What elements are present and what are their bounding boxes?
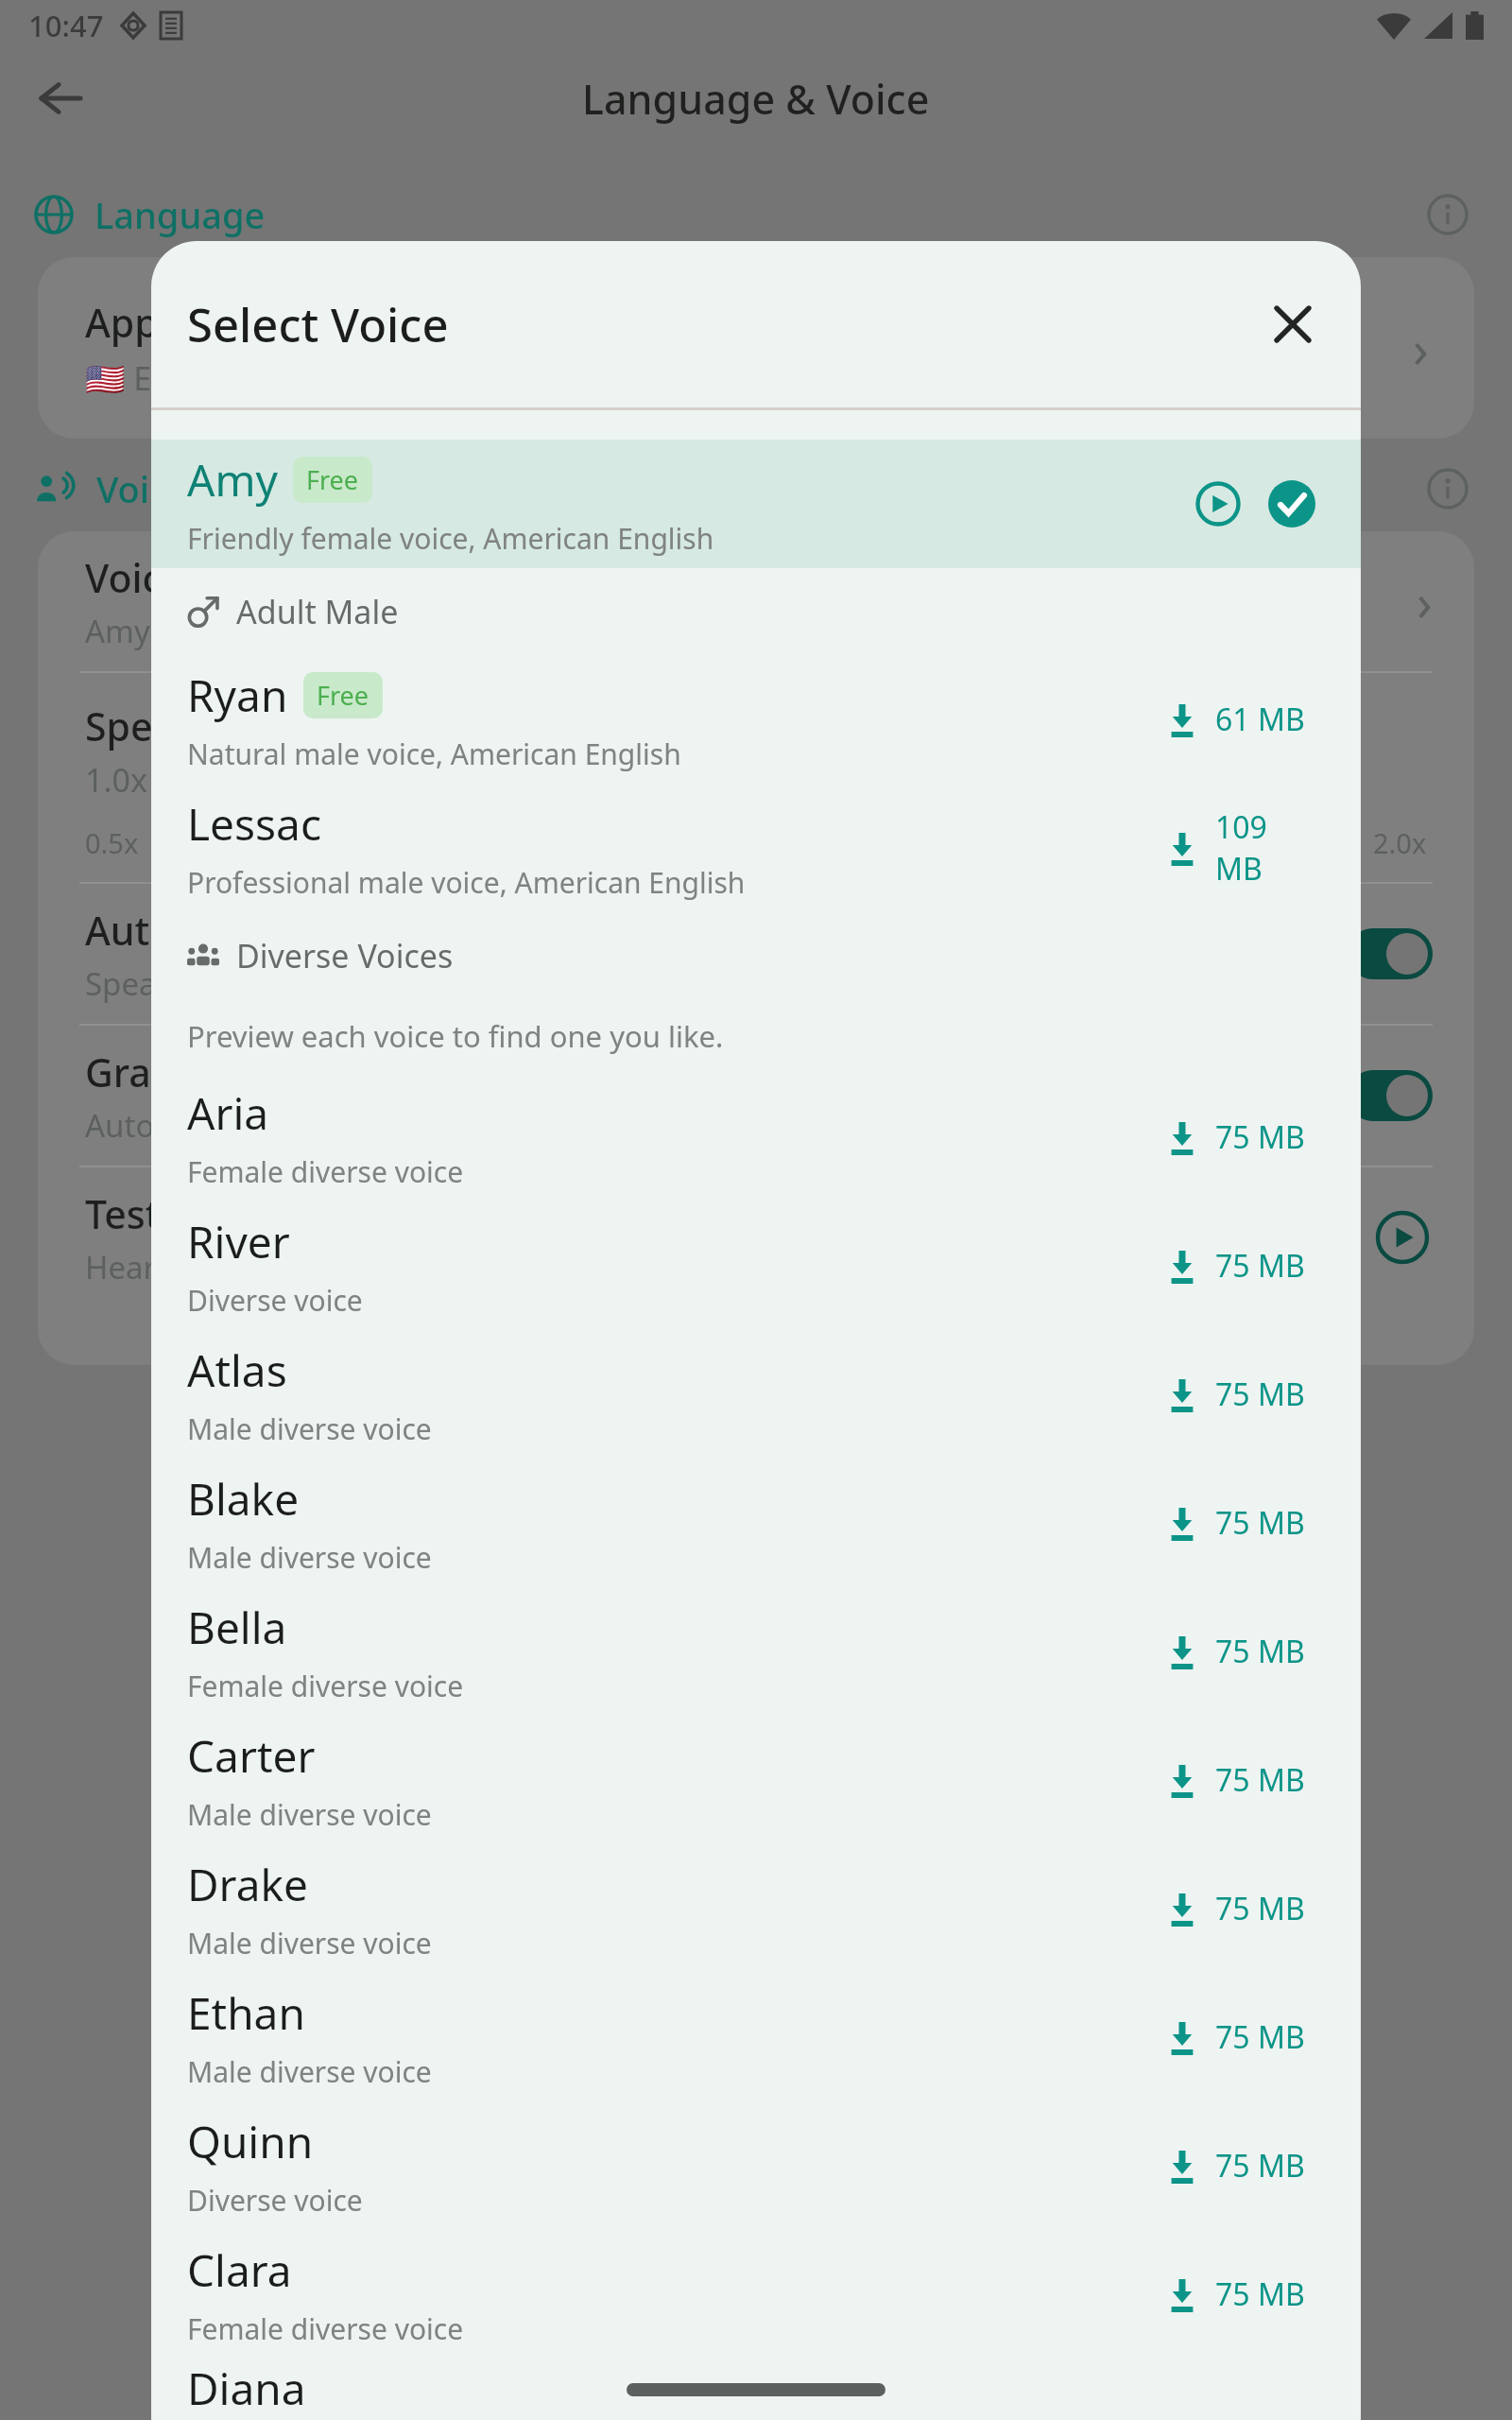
staticText: Male diverse voice [187,2052,432,2091]
staticText: Diverse voice [187,2181,363,2220]
staticText: Free [317,678,369,713]
button[interactable]: Diana [151,2359,1361,2420]
button[interactable]: Download Drake [1160,1878,1325,1939]
staticText: 75 MB [1215,1245,1305,1287]
staticText: 75 MB [1215,1888,1305,1929]
button[interactable]: Info [1417,458,1478,519]
staticText: Test Voice [85,1187,269,1240]
button[interactable]: Ryan [151,655,1361,784]
staticText: Language & Voice [582,71,930,127]
button[interactable]: Info [1417,184,1478,245]
staticText: Auto-correct speech [85,1104,379,1147]
button[interactable]: Download Atlas [1160,1364,1325,1425]
button[interactable] [1348,928,1433,979]
staticText: 109 MB [1215,806,1321,890]
button[interactable]: Download River [1160,1236,1325,1296]
staticText: Ryan [187,665,288,725]
button[interactable]: Download Quinn [1160,2135,1325,2196]
button[interactable]: Drake [151,1844,1361,1973]
staticText: 10:47 [28,6,104,45]
staticText: Aria [187,1083,269,1143]
staticText: Grammar [85,1046,264,1098]
staticText: Amy - Friendly female voice [85,610,486,652]
button[interactable]: Download Lessac [1160,797,1325,899]
staticText: 75 MB [1215,1116,1305,1158]
staticText: 75 MB [1215,1631,1305,1672]
button[interactable]: Play sample [1372,1207,1433,1268]
button[interactable]: App Language [38,257,1474,439]
staticText: Professional male voice, American Englis… [187,863,746,902]
staticText: 🇺🇸 English (US) [85,356,312,400]
staticText: Atlas [187,1340,287,1400]
staticText: Male diverse voice [187,1924,432,1962]
staticText: Language [94,190,266,239]
button[interactable]: Lessac [151,784,1361,912]
staticText: Lessac [187,794,322,854]
staticText: › [1417,566,1433,636]
staticText: Adult Male [236,590,399,633]
staticText: Preview each voice to find one you like. [187,1016,724,1056]
staticText: Diverse voice [187,1281,363,1320]
staticText: Auto-read [85,904,270,957]
staticText: Amy [187,450,278,510]
staticText: 1.0x (Normal) [85,758,289,802]
button[interactable]: Test Voice [38,1167,1474,1307]
staticText: Female diverse voice [187,2309,464,2348]
button[interactable]: Carter [151,1716,1361,1844]
button[interactable]: Ethan [151,1973,1361,2101]
button[interactable]: Atlas [151,1330,1361,1459]
button[interactable]: Grammar [38,1026,1474,1166]
button[interactable] [1348,1070,1433,1121]
staticText: 75 MB [1215,2273,1305,2315]
staticText: Natural male voice, American English [187,735,681,773]
staticText: 61 MB [1215,699,1305,740]
button[interactable]: Amy selected [1255,467,1329,541]
staticText: › [1413,313,1429,383]
staticText: Ethan [187,1983,305,2043]
staticText: 75 MB [1215,1374,1305,1415]
staticText: Hear a sample [85,1246,297,1288]
staticText: Bella [187,1598,287,1657]
button[interactable]: Download Ethan [1160,2007,1325,2067]
staticText: Speed [85,700,199,752]
button[interactable]: Download Carter [1160,1750,1325,1810]
staticText: App Language [85,296,352,349]
staticText: 2.0x [1373,824,1427,861]
staticText: 75 MB [1215,1502,1305,1544]
button[interactable]: Download Clara [1160,2264,1325,2325]
button[interactable]: Blake [151,1459,1361,1587]
staticText: Select Voice [187,293,449,356]
staticText: Blake [187,1469,300,1529]
staticText: Male diverse voice [187,1538,432,1577]
staticText: Female diverse voice [187,1667,464,1705]
staticText: 0.5x [85,824,139,861]
button[interactable]: Amy [151,440,1361,568]
staticText: Free [306,462,359,497]
button[interactable]: Aria [151,1073,1361,1201]
button[interactable]: Close [1251,283,1334,366]
staticText: Carter [187,1726,316,1786]
staticText: Friendly female voice, American English [187,519,714,558]
button[interactable]: Back [21,59,100,138]
button[interactable]: Clara [151,2230,1361,2359]
staticText: Quinn [187,2112,314,2171]
button[interactable]: Preview Amy [1181,467,1255,541]
staticText: River [187,1212,290,1271]
button[interactable]: Download Aria [1160,1107,1325,1167]
button[interactable]: Voice [38,531,1474,671]
staticText: Clara [187,2240,292,2300]
button[interactable]: River [151,1201,1361,1330]
staticText: Drake [187,1855,308,1914]
button[interactable]: Auto-read [38,884,1474,1024]
button[interactable]: Quinn [151,2101,1361,2230]
button[interactable]: Bella [151,1587,1361,1716]
staticText: 75 MB [1215,1759,1305,1801]
staticText: Diana [187,2359,306,2418]
button[interactable]: Download Bella [1160,1621,1325,1682]
staticText: Male diverse voice [187,1409,432,1448]
staticText: Diverse Voices [236,934,454,977]
button[interactable]: Download Blake [1160,1493,1325,1553]
button[interactable]: Download Ryan [1160,689,1325,750]
staticText: Speak new messages [85,962,396,1005]
staticText: Voice [85,551,184,604]
